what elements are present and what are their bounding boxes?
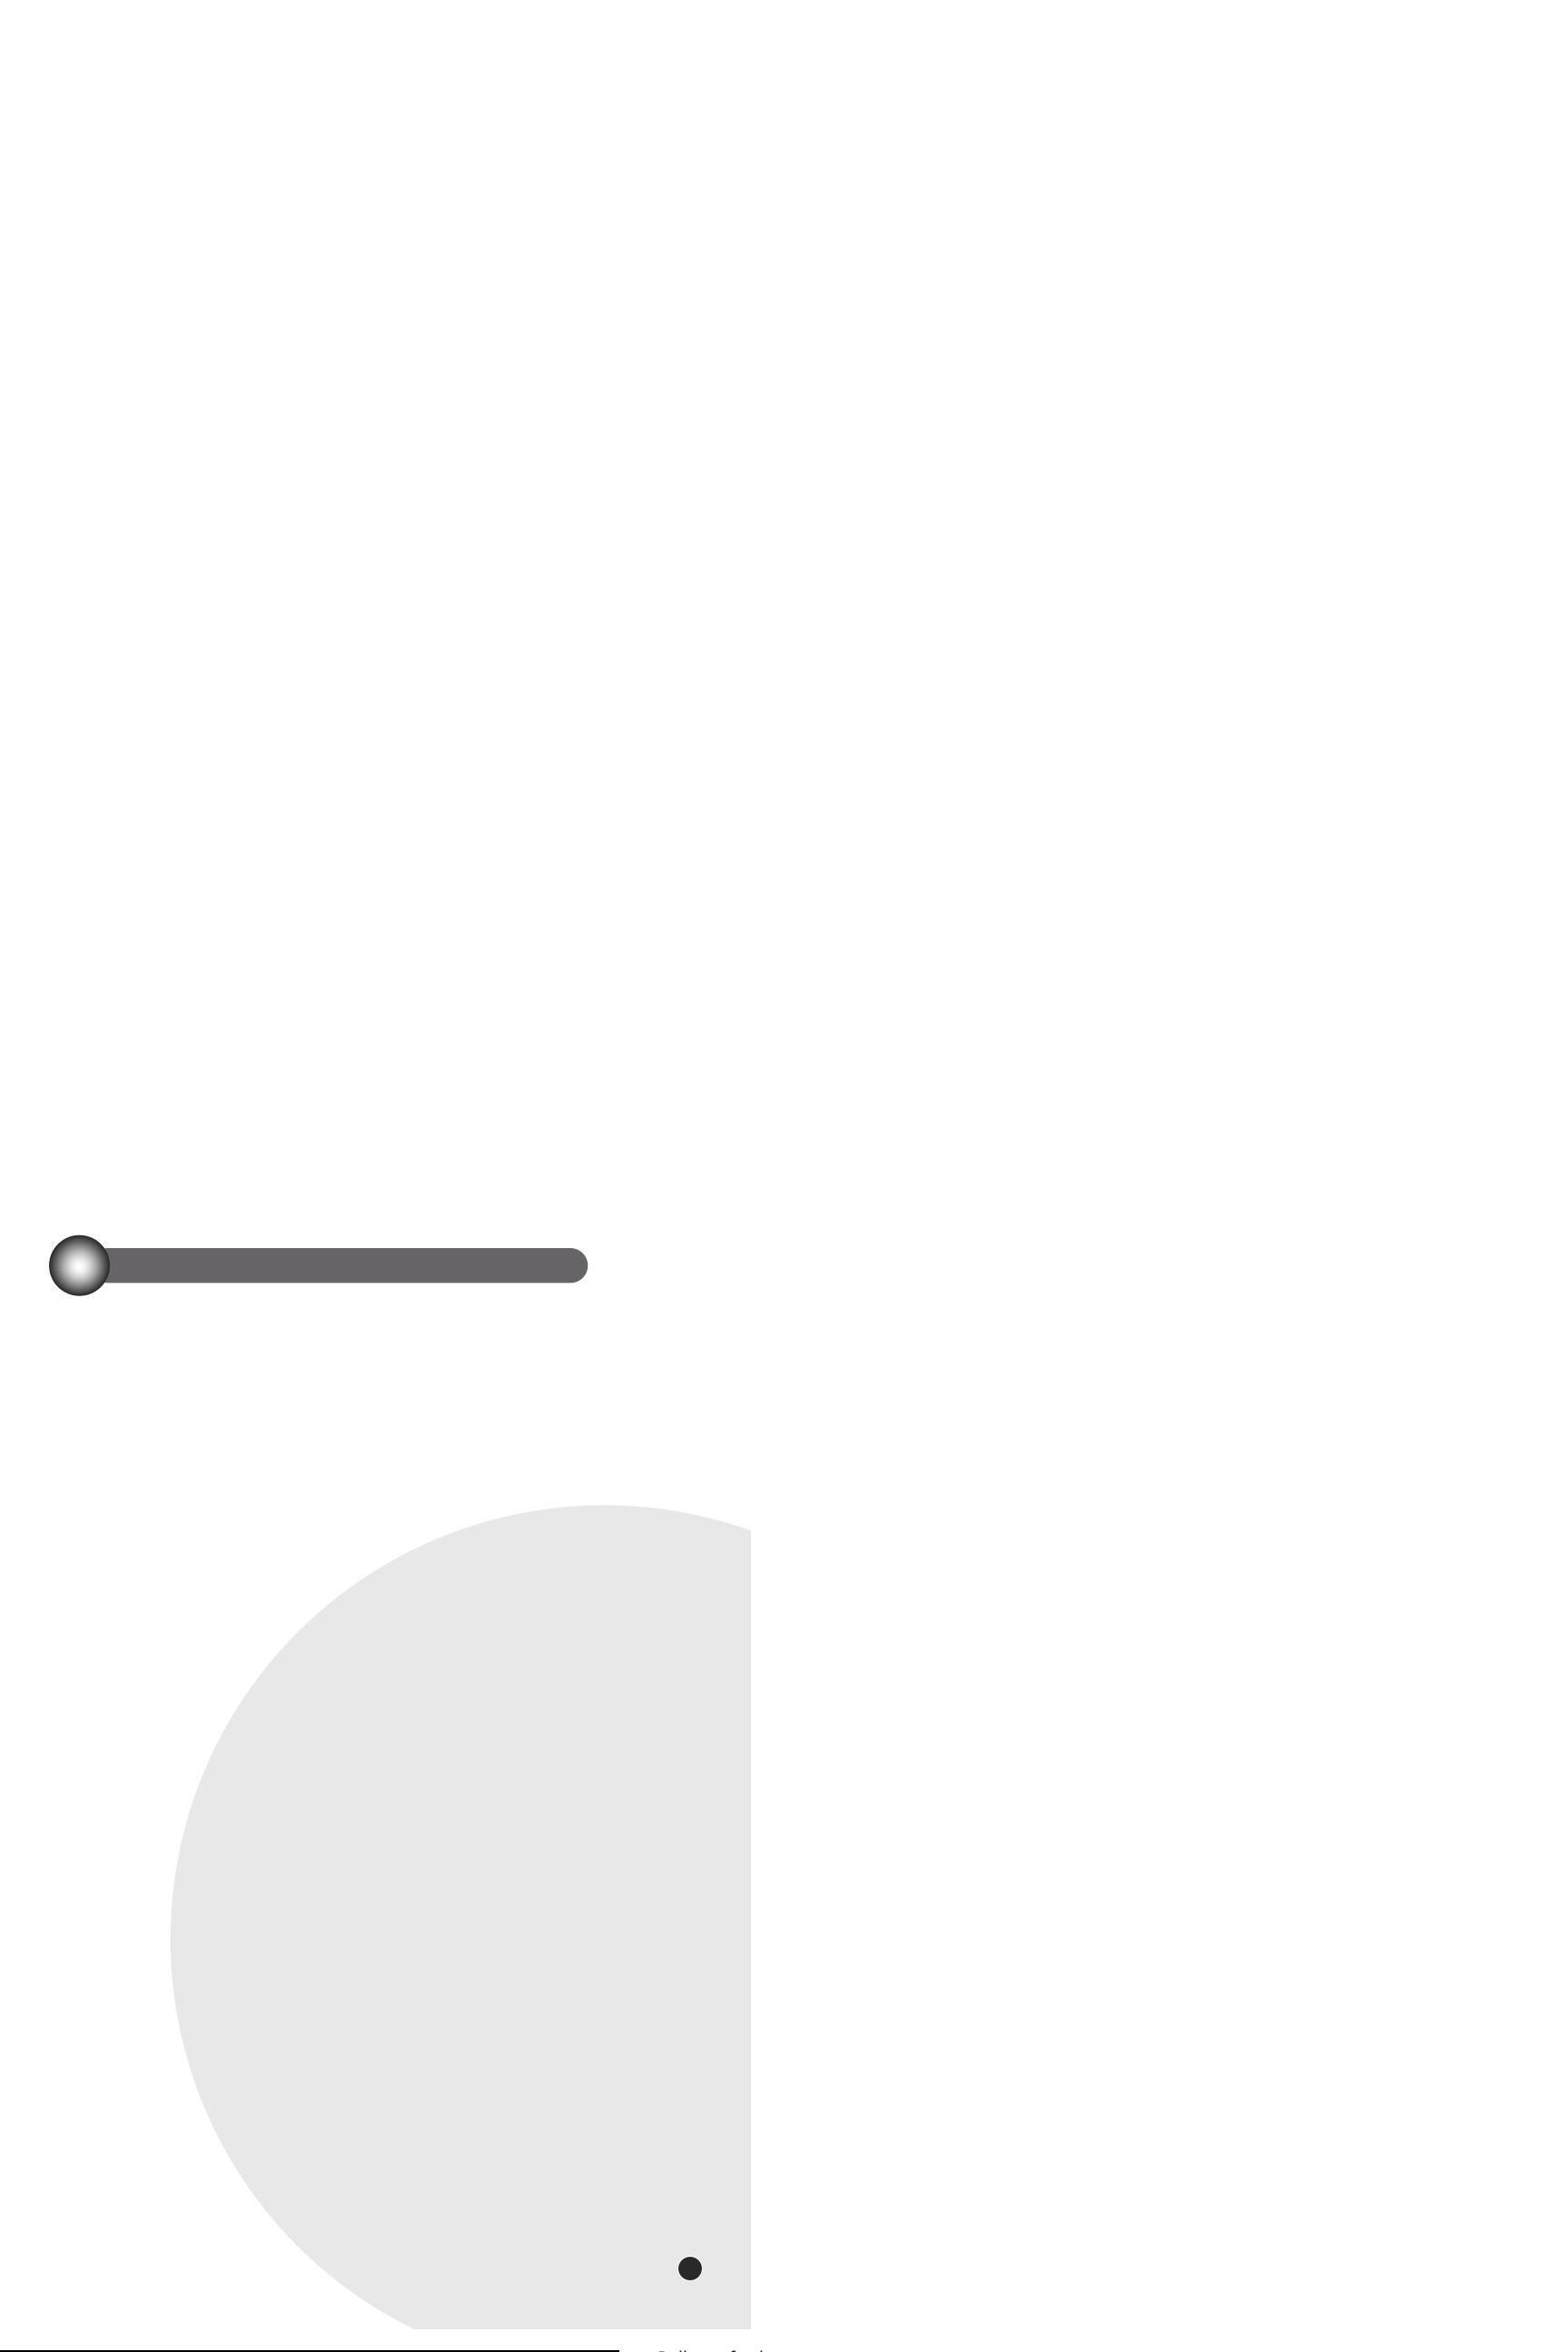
button[interactable]: Marker [677, 2256, 703, 2281]
staticText: Pull to refresh [657, 2345, 770, 2352]
button[interactable]: Adjust value [49, 1235, 588, 1296]
button[interactable]: Pull to refresh [657, 2345, 770, 2352]
